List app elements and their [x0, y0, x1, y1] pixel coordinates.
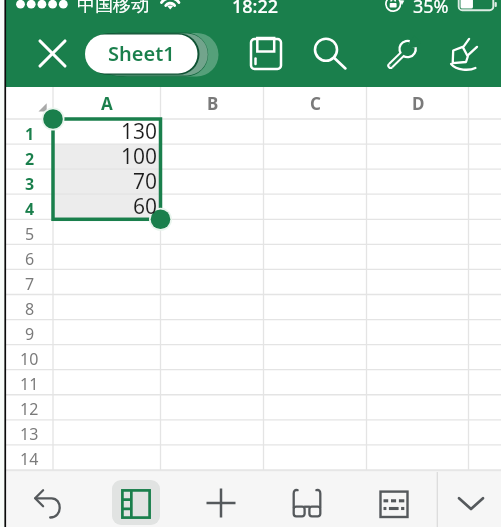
staticText: 8: [25, 298, 35, 320]
button[interactable]: 8: [6, 296, 53, 321]
staticText: D: [412, 92, 425, 115]
staticText: Sheet1: [108, 40, 175, 67]
button[interactable]: B: [161, 87, 264, 119]
button[interactable]: Undo: [23, 479, 75, 526]
button[interactable]: 11: [6, 371, 53, 396]
staticText: 12: [20, 398, 39, 420]
staticText: 11: [20, 373, 39, 395]
button[interactable]: 12: [6, 396, 53, 421]
staticText: 7: [25, 273, 35, 295]
button[interactable]: Collapse: [445, 479, 497, 526]
button[interactable]: Sheet: [112, 480, 160, 525]
staticText: A: [101, 92, 113, 115]
button[interactable]: 14: [6, 446, 53, 471]
button[interactable]: Keyboard: [368, 479, 420, 526]
button[interactable]: Close: [26, 28, 79, 79]
button[interactable]: 2: [6, 146, 53, 171]
button[interactable]: 5: [6, 221, 53, 246]
button[interactable]: C: [264, 87, 367, 119]
staticText: 10: [20, 348, 39, 370]
button[interactable]: A: [53, 87, 161, 119]
button[interactable]: Insert: [195, 479, 247, 526]
button[interactable]: 13: [6, 421, 53, 446]
staticText: C: [310, 92, 321, 115]
staticText: 3: [25, 173, 35, 195]
button[interactable]: 7: [6, 271, 53, 296]
button[interactable]: 4: [6, 196, 53, 221]
staticText: 中国移动: [77, 0, 149, 17]
button[interactable]: Reading mode: [281, 479, 333, 526]
button[interactable]: 9: [6, 321, 53, 346]
button[interactable]: Annotate: [437, 30, 491, 77]
staticText: 18:22: [232, 0, 279, 18]
staticText: 14: [20, 448, 39, 470]
staticText: 70: [133, 167, 158, 192]
staticText: 35%: [413, 0, 449, 18]
button[interactable]: 1: [6, 121, 53, 146]
staticText: 4: [25, 198, 35, 220]
staticText: 5: [25, 223, 35, 245]
staticText: 100: [121, 142, 158, 167]
button[interactable]: Search: [303, 30, 357, 77]
button[interactable]: 10: [6, 346, 53, 371]
button[interactable]: 6: [6, 246, 53, 271]
staticText: 1: [25, 123, 35, 145]
button[interactable]: 3: [6, 171, 53, 196]
button[interactable]: D: [367, 87, 469, 119]
staticText: 13: [20, 423, 39, 445]
staticText: 2: [25, 148, 35, 170]
button[interactable]: Save: [239, 30, 293, 77]
button[interactable]: Sheet1: [85, 34, 198, 73]
staticText: B: [207, 92, 219, 115]
staticText: 9: [25, 323, 35, 345]
staticText: 130: [121, 117, 158, 142]
staticText: 60: [133, 192, 158, 217]
button[interactable]: Tools: [375, 30, 429, 77]
staticText: 6: [25, 248, 35, 270]
